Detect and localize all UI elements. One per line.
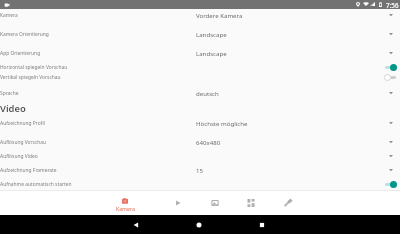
staticText: Aufzeichnung Profil [0, 120, 45, 127]
button[interactable]: Sprache [0, 86, 400, 100]
staticText: Vertikal spiegeln Vorschau [0, 74, 61, 81]
staticText: 7:56 [386, 1, 399, 10]
button[interactable]: Bilder [197, 190, 233, 215]
staticText: Vordere Kamera [196, 11, 243, 19]
staticText: Kamera [116, 205, 135, 212]
staticText: Landscape [196, 30, 227, 38]
staticText: Auflösung Vorschau [0, 139, 47, 146]
staticText: deutsch [196, 89, 219, 97]
staticText: 15 [196, 166, 203, 174]
staticText: App Orientierung [0, 50, 41, 57]
staticText: Aufnahme automatisch starten [0, 181, 72, 188]
staticText: Kamera [0, 12, 18, 19]
button[interactable]: App Orientierung [0, 46, 400, 60]
button[interactable]: Aufnahme automatisch starten [0, 179, 400, 189]
button[interactable]: Kamera [98, 190, 152, 215]
button[interactable]: Back [120, 215, 152, 234]
staticText: Aufzeichnung Framerate [0, 167, 57, 174]
staticText: Höchste mögliche [196, 119, 248, 127]
button[interactable]: Aufzeichnung Profil [0, 116, 400, 130]
button[interactable]: Einstellungen [270, 190, 306, 215]
button[interactable]: Auflösung Vorschau [0, 135, 400, 149]
staticText: Sprache [0, 90, 19, 97]
staticText: Landscape [196, 49, 227, 57]
button[interactable]: Kamera Orientierung [0, 27, 400, 41]
staticText: 640x480 [196, 138, 221, 146]
button[interactable]: Horizontal spiegeln Vorschau [0, 62, 400, 72]
button[interactable]: Aufzeichnung Framerate [0, 163, 400, 177]
staticText: Kamera Orientierung [0, 31, 49, 38]
button[interactable]: Recents [246, 215, 278, 234]
staticText: Video [0, 102, 26, 115]
button[interactable]: Home [183, 215, 215, 234]
staticText: Auflösung Video [0, 153, 38, 160]
button[interactable]: Kamera [0, 8, 400, 22]
button[interactable]: Übersicht [233, 190, 269, 215]
button[interactable]: Videos [160, 190, 196, 215]
button[interactable]: Vertikal spiegeln Vorschau [0, 72, 400, 82]
staticText: Horizontal spiegeln Vorschau [0, 64, 68, 71]
button[interactable]: Auflösung Video [0, 149, 400, 163]
